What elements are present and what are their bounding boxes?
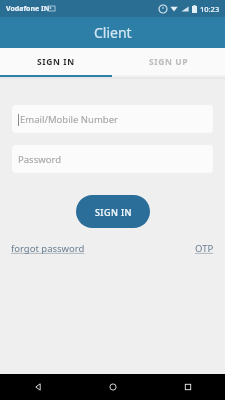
button[interactable]: OTP [193,240,216,257]
staticText: SIGN IN [95,206,132,218]
staticText: forgot password [11,242,85,255]
staticText: SIGN UP [149,56,189,68]
staticText: Vodafone IN [6,4,50,14]
button[interactable]: Back [0,374,75,400]
button[interactable]: SIGN UP [112,48,225,75]
staticText: Client [94,23,132,42]
staticText: OTP [195,242,214,255]
staticText: 10:23 [200,4,220,14]
button[interactable]: Recent apps [150,374,225,400]
staticText: Password [18,153,61,166]
button[interactable]: SIGN IN [0,48,112,75]
staticText: SIGN IN [37,56,75,68]
staticText: Email/Mobile Number [20,113,118,126]
button[interactable]: Home [75,374,150,400]
button[interactable]: forgot password [9,240,87,257]
button[interactable]: Password [12,145,213,173]
button[interactable]: Email/Mobile Number [12,105,213,133]
button[interactable]: SIGN IN [76,195,150,228]
